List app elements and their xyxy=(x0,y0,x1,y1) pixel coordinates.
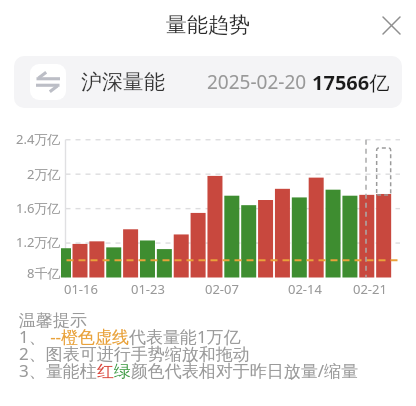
staticText: 01-23 xyxy=(131,280,165,297)
button[interactable]: 沪深量能 xyxy=(14,56,402,108)
button[interactable] xyxy=(374,8,408,42)
staticText: 2、图表可进行手势缩放和拖动 xyxy=(19,342,250,365)
staticText: 17566亿 xyxy=(312,69,390,96)
staticText: 2万亿 xyxy=(27,165,61,183)
staticText: 沪深量能 xyxy=(81,69,165,95)
button[interactable] xyxy=(0,125,416,297)
staticText: 3、量能柱红绿颜色代表相对于昨日放量/缩量 xyxy=(19,359,359,382)
staticText: 1.2万亿 xyxy=(16,233,61,251)
staticText: 温馨提示 xyxy=(19,310,87,331)
staticText: 1.6万亿 xyxy=(16,199,61,217)
staticText: 02-14 xyxy=(288,280,322,297)
staticText: 02-21 xyxy=(353,280,387,297)
staticText: 01-16 xyxy=(64,280,98,297)
staticText: 1、 --橙色虚线代表量能1万亿 xyxy=(19,325,241,348)
staticText: 量能趋势 xyxy=(166,12,250,38)
staticText: 2025-02-20 xyxy=(207,69,307,95)
staticText: 02-07 xyxy=(205,280,239,297)
staticText: 8千亿 xyxy=(27,264,61,282)
staticText: 2.4万亿 xyxy=(16,130,61,148)
